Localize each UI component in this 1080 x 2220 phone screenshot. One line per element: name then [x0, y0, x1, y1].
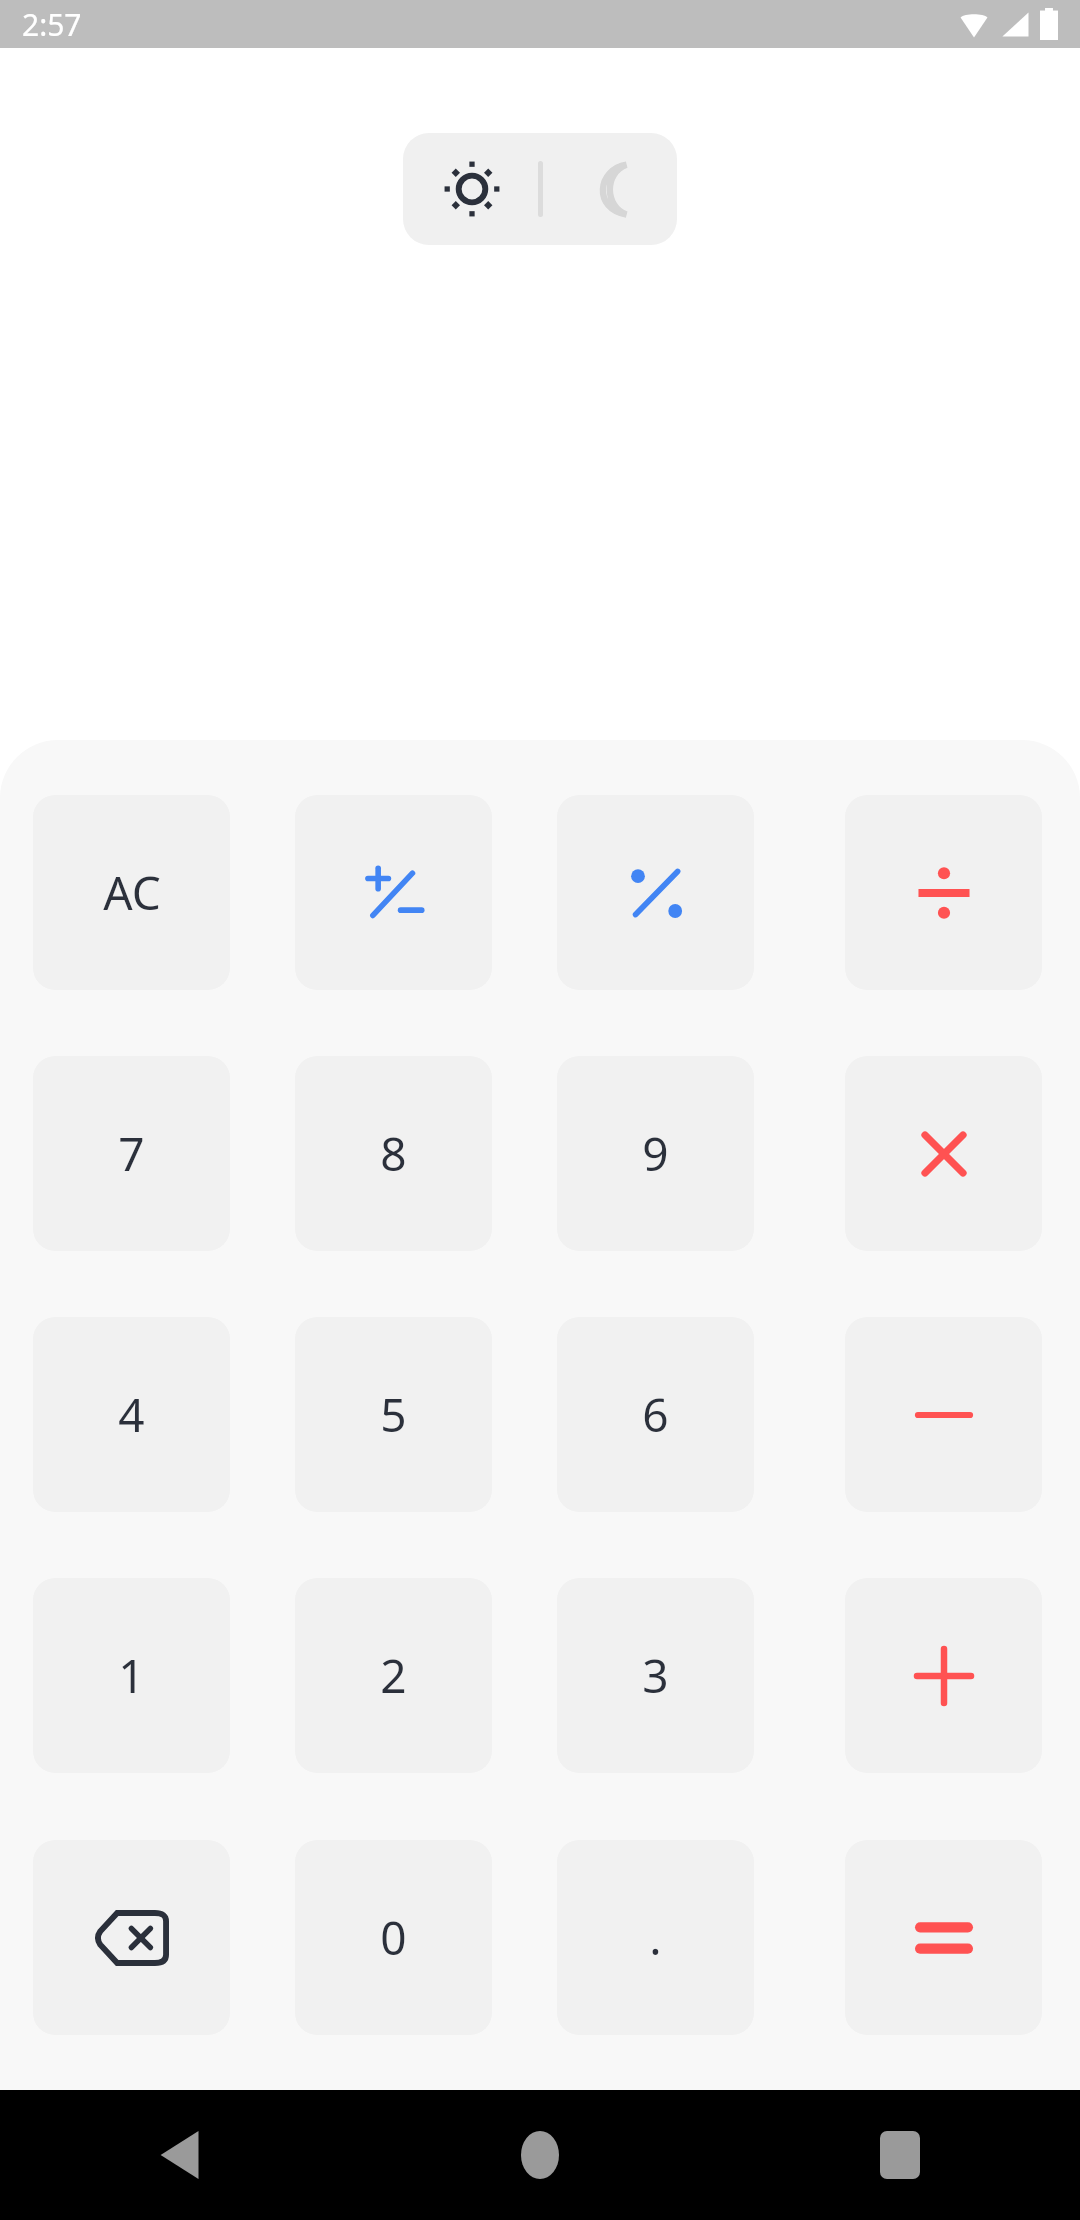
button[interactable]: Plus minus: [295, 795, 492, 990]
button[interactable]: 4: [33, 1317, 230, 1512]
staticText: AC: [103, 861, 161, 924]
button[interactable]: Add: [845, 1578, 1042, 1773]
button[interactable]: 5: [295, 1317, 492, 1512]
button[interactable]: 2: [295, 1578, 492, 1773]
button[interactable]: Divide: [845, 795, 1042, 990]
staticText: 2:57: [22, 4, 82, 45]
button[interactable]: .: [557, 1840, 754, 2035]
button[interactable]: Subtract: [845, 1317, 1042, 1512]
staticText: 2: [380, 1644, 407, 1707]
staticText: 9: [642, 1122, 669, 1185]
button[interactable]: 0: [295, 1840, 492, 2035]
button[interactable]: Percent: [557, 795, 754, 990]
button[interactable]: Equals: [845, 1840, 1042, 2035]
button[interactable]: 3: [557, 1578, 754, 1773]
staticText: 8: [380, 1122, 407, 1185]
staticText: 5: [380, 1383, 407, 1446]
button[interactable]: 1: [33, 1578, 230, 1773]
button[interactable]: Light theme: [403, 133, 540, 245]
staticText: 4: [118, 1383, 145, 1446]
button[interactable]: Recent apps: [720, 2090, 1080, 2220]
button[interactable]: Multiply: [845, 1056, 1042, 1251]
staticText: 0: [380, 1906, 407, 1969]
button[interactable]: Home: [360, 2090, 720, 2220]
staticText: 3: [642, 1644, 669, 1707]
staticText: 6: [642, 1383, 669, 1446]
button[interactable]: 9: [557, 1056, 754, 1251]
button[interactable]: 6: [557, 1317, 754, 1512]
staticText: .: [649, 1906, 662, 1969]
button[interactable]: Backspace: [33, 1840, 230, 2035]
button[interactable]: Dark theme: [540, 133, 677, 245]
button[interactable]: AC: [33, 795, 230, 990]
button[interactable]: 8: [295, 1056, 492, 1251]
button[interactable]: 7: [33, 1056, 230, 1251]
staticText: 1: [118, 1644, 145, 1707]
staticText: 7: [118, 1122, 145, 1185]
button[interactable]: Back: [0, 2090, 360, 2220]
